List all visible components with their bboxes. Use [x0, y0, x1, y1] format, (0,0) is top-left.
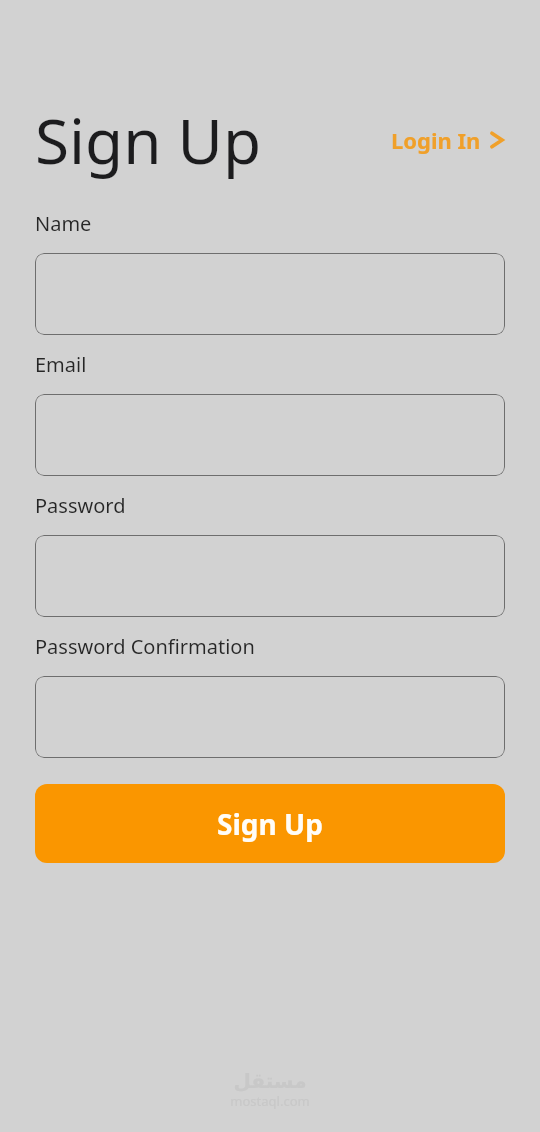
staticText: Name — [35, 210, 92, 237]
button[interactable] — [35, 535, 505, 617]
button[interactable] — [35, 253, 505, 335]
staticText: Sign Up — [217, 805, 323, 843]
staticText: Password — [35, 492, 126, 519]
staticText: Email — [35, 351, 87, 378]
button[interactable]: Sign Up — [35, 784, 505, 863]
staticText: Sign Up — [35, 98, 262, 182]
staticText: Password Confirmation — [35, 633, 255, 660]
staticText: mostaql.com — [230, 1092, 310, 1110]
button[interactable] — [35, 394, 505, 476]
staticText: Login In — [391, 125, 481, 155]
button[interactable]: Login In — [381, 119, 505, 161]
staticText: مستقل — [233, 1069, 307, 1092]
button[interactable] — [35, 676, 505, 758]
